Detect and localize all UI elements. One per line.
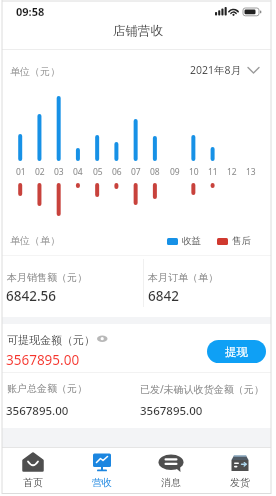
button[interactable]: 首页	[0, 448, 67, 496]
staticText: 03	[54, 166, 64, 178]
staticText: 13	[246, 166, 256, 178]
staticText: 05	[93, 166, 103, 178]
button[interactable]: 2021年8月	[190, 61, 262, 79]
staticText: 营收	[92, 476, 112, 489]
staticText: 首页	[23, 476, 43, 489]
staticText: 07	[131, 166, 141, 178]
button[interactable]: 发货	[205, 448, 274, 496]
staticText: 消息	[161, 476, 181, 489]
button[interactable]: 提现	[207, 340, 266, 363]
button[interactable]: 营收	[67, 448, 136, 496]
staticText: 3567895.00	[140, 403, 203, 419]
staticText: 09:58	[16, 4, 45, 19]
staticText: 店铺营收	[113, 23, 163, 39]
staticText: 02	[35, 166, 45, 178]
staticText: 10	[189, 166, 199, 178]
staticText: 06	[112, 166, 122, 178]
staticText: 账户总金额（元）	[7, 382, 87, 395]
staticText: 01	[16, 166, 26, 178]
staticText: 单位（元）	[10, 65, 60, 78]
staticText: 09	[170, 166, 180, 178]
staticText: 08	[150, 166, 160, 178]
button[interactable]: 消息	[136, 448, 205, 496]
staticText: 提现	[225, 345, 248, 359]
staticText: 6842	[148, 287, 179, 305]
button[interactable]	[95, 331, 111, 346]
staticText: 3567895.00	[6, 351, 80, 369]
staticText: 2021年8月	[190, 63, 242, 77]
staticText: 已发/未确认收货金额（元）	[140, 382, 264, 396]
staticText: 收益	[182, 235, 201, 247]
staticText: 04	[73, 166, 83, 178]
staticText: 3567895.00	[6, 403, 69, 419]
staticText: 本月销售额（元）	[7, 271, 87, 284]
staticText: 单位（单）	[10, 234, 60, 247]
staticText: 11	[208, 166, 218, 178]
staticText: 售后	[232, 235, 251, 247]
staticText: 可提现金额（元）	[7, 333, 95, 347]
staticText: 12	[227, 166, 237, 178]
staticText: 本月订单（单）	[148, 271, 218, 284]
staticText: 发货	[230, 476, 250, 489]
staticText: 6842.56	[6, 287, 57, 305]
